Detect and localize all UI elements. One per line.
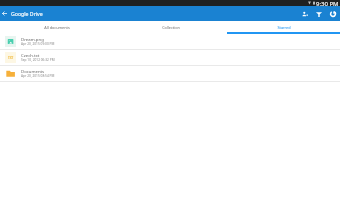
button[interactable]: Starred xyxy=(227,21,340,34)
staticText: Documents xyxy=(21,68,45,74)
button[interactable]: Collection xyxy=(114,21,227,34)
staticText: TXT xyxy=(8,56,14,60)
button[interactable]: Dream.png xyxy=(0,34,340,50)
button[interactable]: TXT xyxy=(0,50,340,66)
button[interactable]: Filter xyxy=(312,6,326,21)
staticText: Apr 20, 2015 08:54 PM xyxy=(21,74,55,78)
staticText: Google Drive xyxy=(11,10,43,17)
button[interactable]: Add people xyxy=(298,6,312,21)
staticText: Starred xyxy=(277,25,291,30)
staticText: All documents xyxy=(44,25,70,30)
staticText: 9:30 PM xyxy=(316,0,339,6)
button[interactable]: All documents xyxy=(0,21,114,34)
staticText: Dream.png xyxy=(21,36,44,42)
button[interactable]: Back xyxy=(0,6,9,21)
button[interactable]: Refresh xyxy=(326,6,340,21)
staticText: Czech.txt xyxy=(21,52,40,58)
staticText: Collection xyxy=(162,25,180,30)
staticText: Sep 10, 2012 06:32 PM xyxy=(21,58,55,62)
staticText: Apr 20, 2015 09:00 PM xyxy=(21,42,55,46)
button[interactable]: Documents xyxy=(0,66,340,82)
